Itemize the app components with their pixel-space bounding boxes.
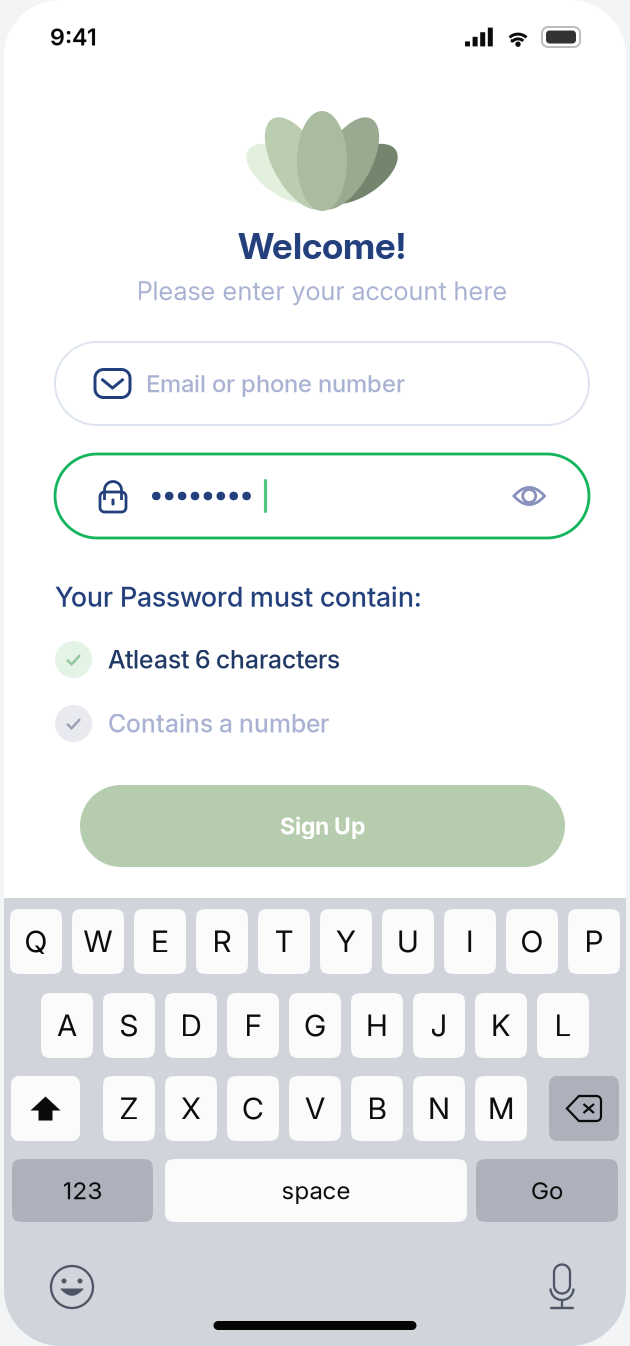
staticText: T: [274, 923, 293, 960]
button[interactable]: U: [382, 909, 434, 974]
staticText: 9:41: [50, 23, 97, 51]
button[interactable]: W: [72, 909, 124, 974]
staticText: I: [466, 923, 474, 960]
button[interactable]: Emoji keyboard: [49, 1264, 95, 1310]
staticText: Please enter your account here: [136, 275, 507, 306]
staticText: F: [244, 1007, 261, 1044]
staticText: X: [181, 1090, 201, 1127]
button[interactable]: Sign Up: [80, 785, 565, 867]
button[interactable]: L: [537, 993, 589, 1058]
staticText: R: [212, 923, 231, 960]
staticText: Atleast 6 characters: [108, 644, 340, 675]
button[interactable]: G: [289, 993, 341, 1058]
button[interactable]: Show password: [512, 483, 546, 508]
staticText: Y: [336, 923, 356, 960]
button[interactable]: N: [413, 1076, 465, 1141]
staticText: P: [584, 923, 603, 960]
button[interactable]: space: [165, 1159, 467, 1222]
button[interactable]: R: [196, 909, 248, 974]
button[interactable]: M: [475, 1076, 527, 1141]
staticText: J: [430, 1007, 447, 1044]
button[interactable]: O: [506, 909, 558, 974]
staticText: L: [554, 1007, 571, 1044]
button[interactable]: F: [227, 993, 279, 1058]
button[interactable]: H: [351, 993, 403, 1058]
staticText: Z: [119, 1090, 138, 1127]
button[interactable]: C: [227, 1076, 279, 1141]
button[interactable]: Go: [476, 1159, 618, 1222]
button[interactable]: Shift: [11, 1076, 80, 1141]
button[interactable]: Q: [10, 909, 62, 974]
staticText: S: [119, 1007, 138, 1044]
staticText: W: [83, 923, 112, 960]
button[interactable]: B: [351, 1076, 403, 1141]
button[interactable]: Z: [103, 1076, 155, 1141]
staticText: Email or phone number: [146, 369, 405, 398]
button[interactable]: A: [41, 993, 93, 1058]
staticText: N: [428, 1090, 450, 1127]
staticText: space: [281, 1176, 350, 1205]
button[interactable]: T: [258, 909, 310, 974]
staticText: Your Password must contain:: [55, 581, 421, 613]
staticText: M: [488, 1090, 514, 1127]
button[interactable]: 123: [12, 1159, 153, 1222]
staticText: V: [305, 1090, 325, 1127]
button[interactable]: Delete: [549, 1076, 619, 1141]
staticText: Contains a number: [108, 708, 329, 739]
staticText: K: [491, 1007, 511, 1044]
button[interactable]: D: [165, 993, 217, 1058]
button[interactable]: X: [165, 1076, 217, 1141]
button[interactable]: J: [413, 993, 465, 1058]
button[interactable]: I: [444, 909, 496, 974]
button[interactable]: Dictate: [539, 1264, 585, 1310]
button[interactable]: P: [568, 909, 620, 974]
button[interactable]: S: [103, 993, 155, 1058]
staticText: O: [520, 923, 543, 960]
staticText: H: [366, 1007, 388, 1044]
staticText: Sign Up: [280, 812, 365, 840]
staticText: 123: [62, 1176, 102, 1205]
button[interactable]: K: [475, 993, 527, 1058]
staticText: Q: [24, 923, 47, 960]
button[interactable]: V: [289, 1076, 341, 1141]
staticText: Welcome!: [238, 224, 406, 268]
button[interactable]: Y: [320, 909, 372, 974]
staticText: Go: [531, 1176, 563, 1205]
staticText: B: [367, 1090, 386, 1127]
staticText: C: [242, 1090, 264, 1127]
staticText: D: [180, 1007, 201, 1044]
staticText: G: [304, 1007, 326, 1044]
button[interactable]: E: [134, 909, 186, 974]
staticText: E: [151, 923, 169, 960]
staticText: A: [57, 1007, 77, 1044]
staticText: U: [397, 923, 419, 960]
